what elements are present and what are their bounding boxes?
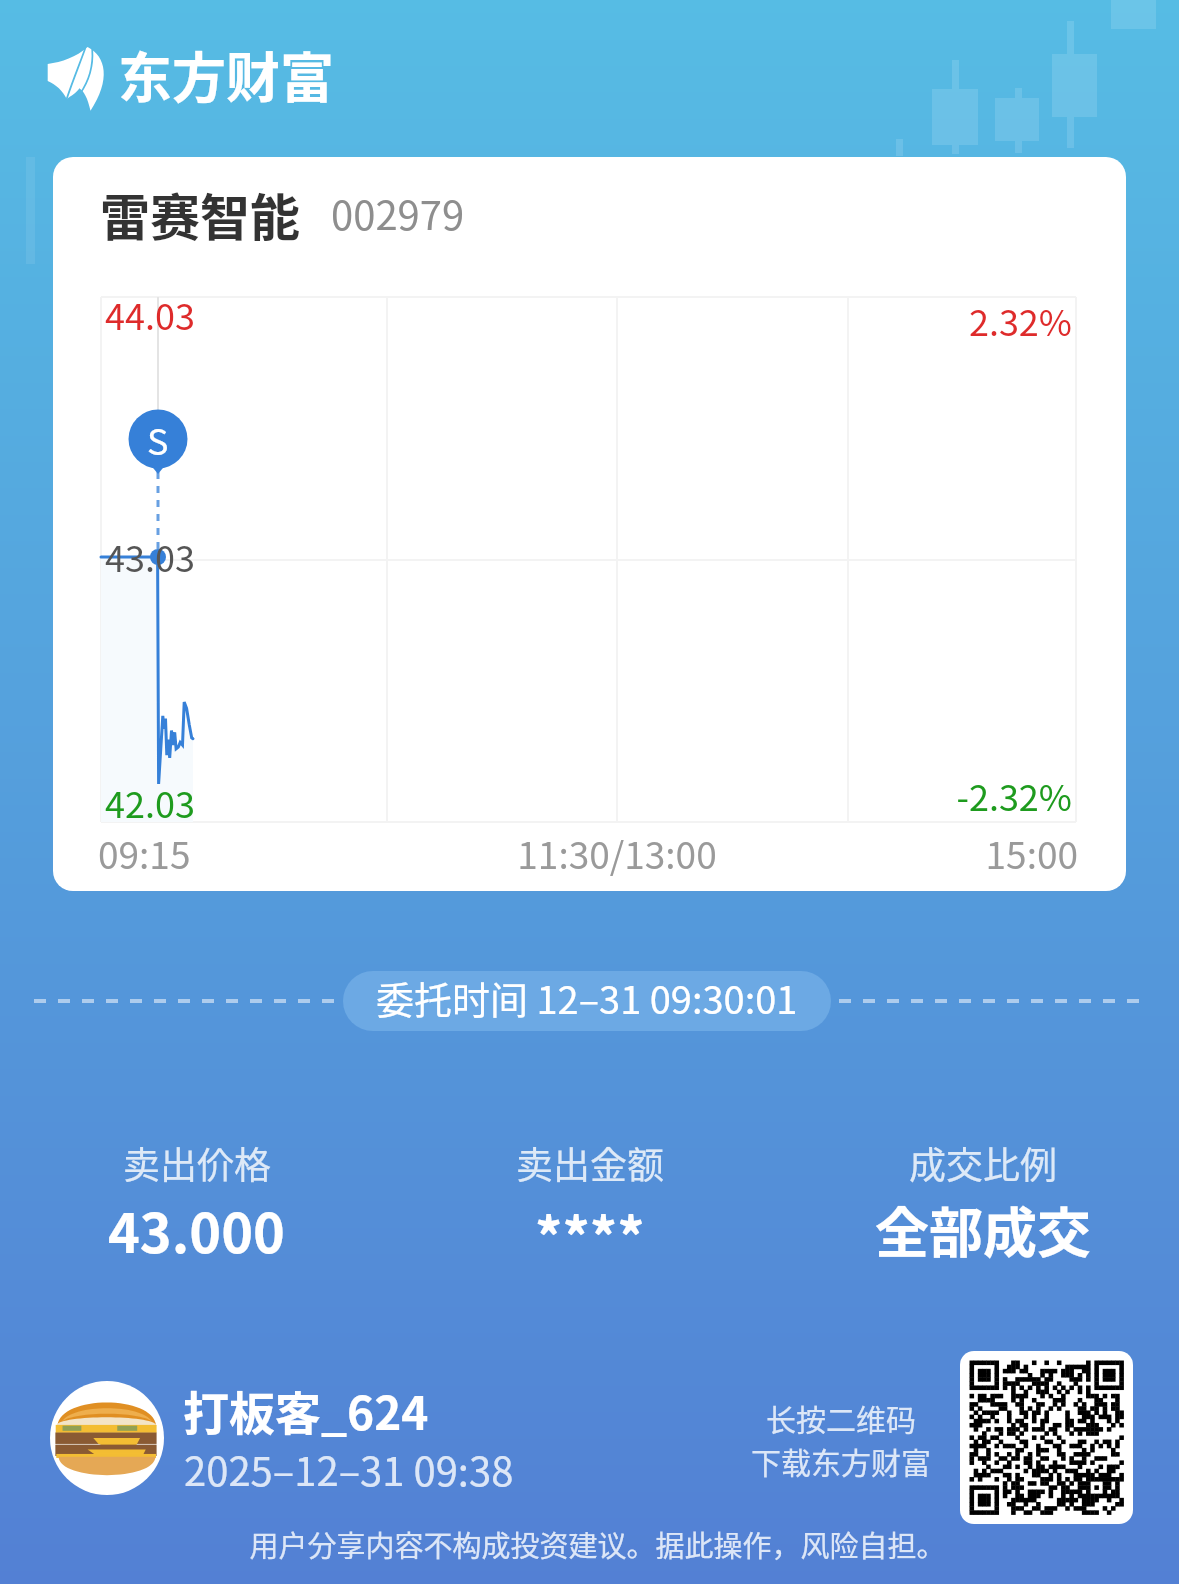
- staticText: 2.32%: [772, 294, 1072, 346]
- button[interactable]: 卖出价格: [0, 1136, 393, 1268]
- button[interactable]: 二维码: [960, 1351, 1133, 1524]
- staticText: 打板客_624: [183, 1377, 429, 1444]
- staticText: 卖出金额: [516, 1136, 664, 1190]
- staticText: 09:15: [98, 826, 191, 880]
- staticText: 成交比例: [909, 1136, 1057, 1190]
- button[interactable]: 东方财富: [44, 38, 344, 116]
- button[interactable]: 用户头像: [50, 1381, 164, 1495]
- staticText: 用户分享内容不构成投资建议。据此操作，风险自担。: [8, 1523, 1179, 1565]
- staticText: 雷赛智能: [100, 178, 300, 250]
- staticText: 委托时间 12–31 09:30:01: [376, 971, 798, 1025]
- staticText: 43.000: [108, 1190, 285, 1268]
- button[interactable]: 成交比例: [786, 1136, 1179, 1268]
- staticText: -2.32%: [772, 769, 1072, 821]
- staticText: 2025–12–31 09:38: [184, 1440, 514, 1498]
- staticText: 15:00: [778, 826, 1078, 880]
- staticText: 43.03: [105, 530, 195, 582]
- staticText: 卖出价格: [123, 1136, 271, 1190]
- staticText: 44.03: [105, 288, 195, 340]
- staticText: 全部成交: [875, 1190, 1091, 1268]
- staticText: 东方财富: [118, 35, 334, 113]
- button[interactable]: 雷赛智能 002979 分时走势图: [53, 157, 1126, 891]
- staticText: ****: [535, 1195, 645, 1273]
- staticText: S: [147, 413, 169, 465]
- staticText: 下载东方财富: [691, 1439, 991, 1482]
- button[interactable]: 卖出金额: [393, 1136, 786, 1268]
- staticText: 11:30/13:00: [467, 826, 767, 880]
- button[interactable]: 委托时间 12–31 09:30:01: [343, 971, 831, 1031]
- staticText: 长按二维码: [691, 1396, 991, 1439]
- staticText: 42.03: [105, 776, 195, 828]
- staticText: 002979: [331, 184, 465, 242]
